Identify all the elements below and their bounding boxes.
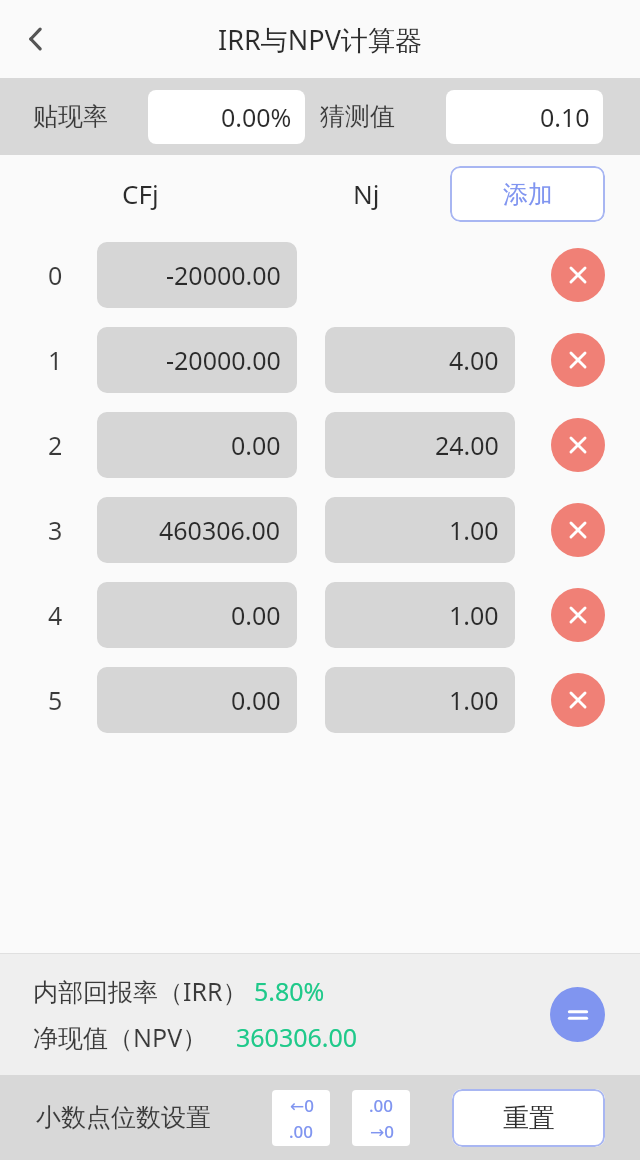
staticText: IRR与NPV计算器 xyxy=(218,21,422,58)
staticText: 小数点位数设置 xyxy=(36,1102,211,1133)
button[interactable]: 0.00 xyxy=(97,412,297,478)
staticText: 460306.00 xyxy=(159,513,281,547)
staticText: 0.00% xyxy=(221,100,292,134)
staticText: 猜测值 xyxy=(320,101,395,132)
button[interactable]: 1.00 xyxy=(325,582,515,648)
staticText: →0 xyxy=(370,1120,394,1143)
button[interactable]: 0.00% xyxy=(148,90,305,144)
button[interactable]: 24.00 xyxy=(325,412,515,478)
staticText: 0 xyxy=(48,258,63,292)
button[interactable]: -20000.00 xyxy=(97,327,297,393)
button[interactable]: Back xyxy=(0,3,72,75)
staticText: 重置 xyxy=(503,1102,555,1135)
button[interactable]: 重置 xyxy=(452,1089,605,1147)
button[interactable]: 460306.00 xyxy=(97,497,297,563)
staticText: 360306.00 xyxy=(236,1020,358,1054)
staticText: 内部回报率（IRR） xyxy=(33,974,248,1008)
staticText: 1.00 xyxy=(449,683,499,717)
staticText: 贴现率 xyxy=(33,101,108,132)
staticText: 0.10 xyxy=(540,100,590,134)
button[interactable]: Increase decimals xyxy=(352,1090,410,1146)
staticText: -20000.00 xyxy=(166,343,281,377)
button[interactable]: 4.00 xyxy=(325,327,515,393)
button[interactable]: Delete row xyxy=(551,333,605,387)
staticText: ←0 xyxy=(290,1094,314,1117)
staticText: Nj xyxy=(353,176,380,211)
button[interactable]: 0.00 xyxy=(97,667,297,733)
button[interactable]: Decrease decimals xyxy=(272,1090,330,1146)
staticText: .00 xyxy=(289,1120,314,1143)
staticText: 1.00 xyxy=(449,598,499,632)
staticText: 24.00 xyxy=(435,428,499,462)
button[interactable]: 0.10 xyxy=(446,90,603,144)
button[interactable]: Delete row xyxy=(551,588,605,642)
staticText: -20000.00 xyxy=(166,258,281,292)
staticText: 3 xyxy=(48,513,63,547)
staticText: 4.00 xyxy=(449,343,499,377)
staticText: CFj xyxy=(122,176,159,211)
button[interactable]: 添加 xyxy=(450,166,605,222)
button[interactable]: 1.00 xyxy=(325,667,515,733)
staticText: 0.00 xyxy=(231,598,281,632)
staticText: 4 xyxy=(48,598,63,632)
staticText: 0.00 xyxy=(231,683,281,717)
button[interactable]: -20000.00 xyxy=(97,242,297,308)
staticText: 5.80% xyxy=(254,974,325,1008)
button[interactable]: Delete row xyxy=(551,418,605,472)
staticText: 5 xyxy=(48,683,63,717)
staticText: 添加 xyxy=(503,179,553,210)
staticText: 净现值（NPV） xyxy=(33,1020,208,1054)
button[interactable]: Delete row xyxy=(551,248,605,302)
staticText: 1 xyxy=(48,343,63,377)
staticText: 0.00 xyxy=(231,428,281,462)
staticText: 2 xyxy=(48,428,63,462)
button[interactable]: Calculate xyxy=(550,987,605,1042)
button[interactable]: Delete row xyxy=(551,503,605,557)
button[interactable]: 0.00 xyxy=(97,582,297,648)
button[interactable]: Delete row xyxy=(551,673,605,727)
staticText: .00 xyxy=(369,1094,394,1117)
button[interactable]: 1.00 xyxy=(325,497,515,563)
staticText: 1.00 xyxy=(449,513,499,547)
